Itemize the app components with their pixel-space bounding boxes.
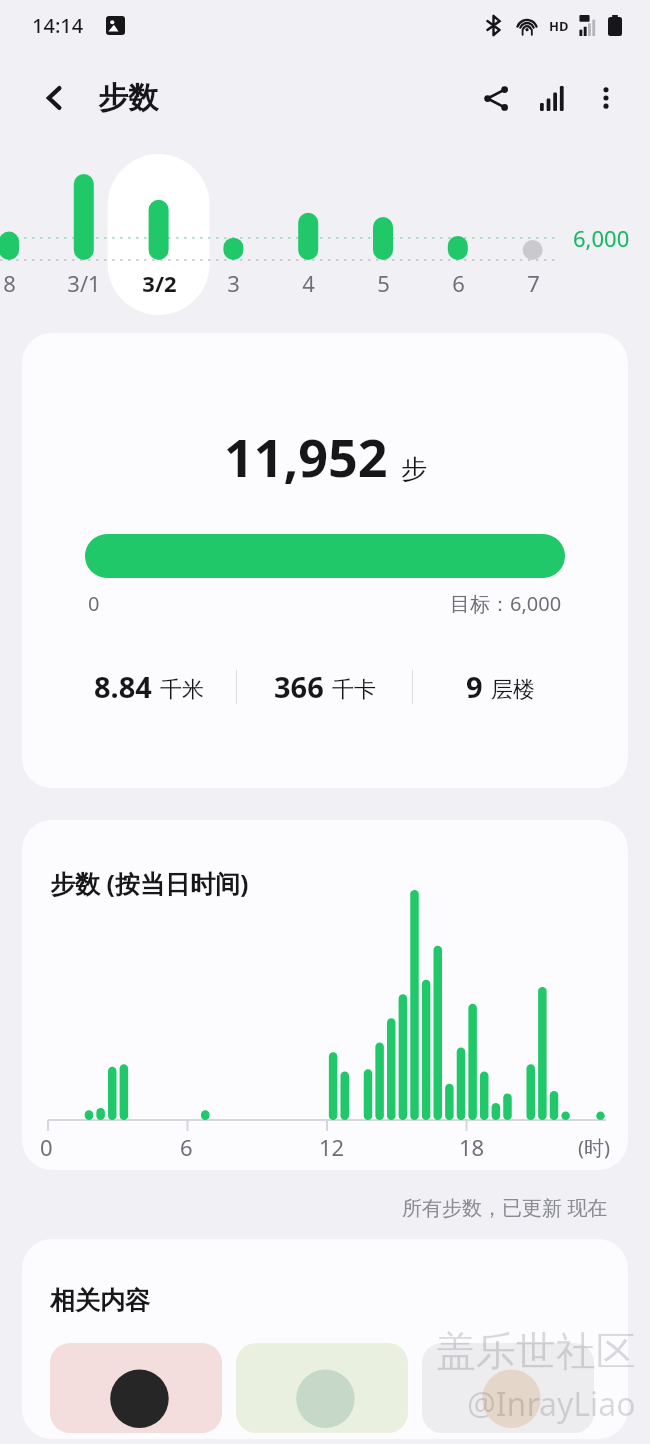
button[interactable]: Back xyxy=(32,75,78,121)
button[interactable]: 3 xyxy=(196,268,270,308)
staticText: 3/2 xyxy=(142,268,177,298)
button[interactable]: More options xyxy=(580,72,632,124)
staticText: 4 xyxy=(302,268,315,298)
button[interactable]: 相关内容 xyxy=(22,1239,628,1439)
staticText: 步数 (按当日时间) xyxy=(50,866,249,900)
button[interactable]: 5 xyxy=(346,268,420,308)
button[interactable]: 6 xyxy=(421,268,495,308)
staticText: 14:14 xyxy=(32,12,84,39)
staticText: 8.84 xyxy=(94,667,152,706)
staticText: 相关内容 xyxy=(50,1285,150,1316)
staticText: 12 xyxy=(319,1132,345,1162)
staticText: 8 xyxy=(3,268,16,298)
staticText: 5 xyxy=(377,268,390,298)
staticText: 6 xyxy=(452,268,465,298)
staticText: 目标：6,000 xyxy=(450,590,562,617)
staticText: 0 xyxy=(88,590,100,617)
button[interactable]: 3/2 xyxy=(122,268,196,308)
button[interactable] xyxy=(236,1343,408,1433)
button[interactable]: 7 xyxy=(496,268,570,308)
button[interactable]: 8 xyxy=(0,268,46,308)
staticText: 3/1 xyxy=(67,268,101,298)
button[interactable]: 11,952 xyxy=(22,333,628,788)
button[interactable]: 3/1 xyxy=(47,268,121,308)
staticText: 7 xyxy=(527,268,540,298)
staticText: 千卡 xyxy=(332,676,376,704)
staticText: 11,952 xyxy=(224,421,388,492)
button[interactable]: 4 xyxy=(271,268,345,308)
staticText: 层楼 xyxy=(491,676,535,704)
staticText: 步 xyxy=(401,453,427,486)
staticText: 千米 xyxy=(160,676,204,704)
staticText: @InrayLiao xyxy=(467,1382,636,1426)
staticText: 步数 xyxy=(98,79,158,117)
staticText: 6,000 xyxy=(573,223,630,253)
button[interactable]: 步数 (按当日时间) xyxy=(22,820,628,1170)
staticText: HD xyxy=(549,17,569,35)
button[interactable] xyxy=(422,1343,594,1433)
staticText: 18 xyxy=(459,1132,485,1162)
staticText: 366 xyxy=(274,667,324,706)
staticText: 所有步数，已更新 现在 xyxy=(402,1194,608,1221)
staticText: 6 xyxy=(180,1132,193,1162)
button[interactable]: Chart xyxy=(524,70,580,126)
staticText: (时) xyxy=(578,1134,610,1161)
staticText: 0 xyxy=(40,1132,53,1162)
button[interactable]: Share xyxy=(468,70,524,126)
staticText: 3 xyxy=(227,268,240,298)
button[interactable] xyxy=(50,1343,222,1433)
staticText: 9 xyxy=(466,667,483,706)
staticText: 盖乐世社区 xyxy=(436,1326,636,1376)
